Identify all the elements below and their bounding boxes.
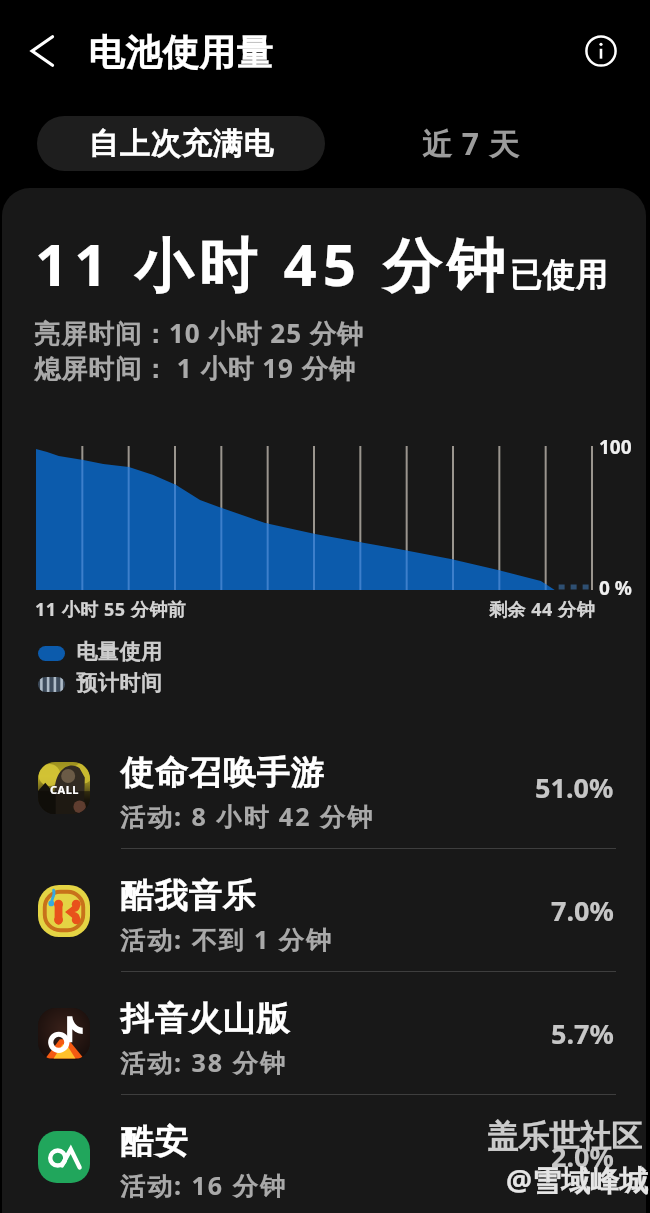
staticText: 11 小时 45 分钟 — [35, 224, 511, 303]
staticText: 近 7 天 — [422, 123, 520, 164]
button[interactable]: Information — [575, 25, 626, 76]
staticText: 盖乐世社区 — [487, 1117, 642, 1156]
staticText: 熄屏时间： 1 小时 19 分钟 — [34, 350, 356, 386]
staticText: 2.0% — [551, 1138, 614, 1175]
staticText: 酷安 — [120, 1121, 188, 1163]
staticText: 11 小时 55 分钟前 — [35, 597, 187, 622]
button[interactable]: 自上次充满电 — [37, 116, 325, 171]
staticText: 活动: 16 分钟 — [120, 1168, 287, 1202]
staticText: CALL — [50, 782, 79, 797]
staticText: 酷我音乐 — [120, 875, 256, 917]
staticText: 51.0% — [535, 769, 614, 806]
staticText: 已使用 — [509, 255, 608, 295]
button[interactable]: 近 7 天 — [396, 116, 546, 171]
staticText: 活动: 38 分钟 — [120, 1045, 287, 1079]
staticText: 使命召唤手游 — [120, 752, 324, 794]
staticText: 活动: 8 小时 42 分钟 — [120, 799, 374, 833]
staticText: 亮屏时间：10 小时 25 分钟 — [34, 315, 364, 351]
button[interactable]: 抖音火山版 — [2, 972, 646, 1095]
staticText: 剩余 44 分钟 — [489, 597, 595, 622]
button[interactable]: Back — [18, 26, 68, 76]
staticText: 5.7% — [551, 1015, 614, 1052]
staticText: 100 — [599, 434, 632, 460]
staticText: 电池使用量 — [88, 30, 273, 75]
staticText: 活动: 不到 1 分钟 — [120, 922, 333, 956]
staticText: @雪域峰城 — [506, 1160, 649, 1200]
button[interactable]: 酷安 — [2, 1095, 646, 1213]
button[interactable]: CALL — [2, 726, 646, 849]
button[interactable]: 酷我音乐 — [2, 849, 646, 972]
staticText: 抖音火山版 — [120, 998, 290, 1040]
staticText: 电量使用 — [76, 639, 162, 665]
staticText: 自上次充满电 — [88, 125, 274, 163]
staticText: 7.0% — [551, 892, 614, 929]
staticText: 预计时间 — [76, 670, 162, 696]
staticText: 0 % — [599, 575, 632, 601]
